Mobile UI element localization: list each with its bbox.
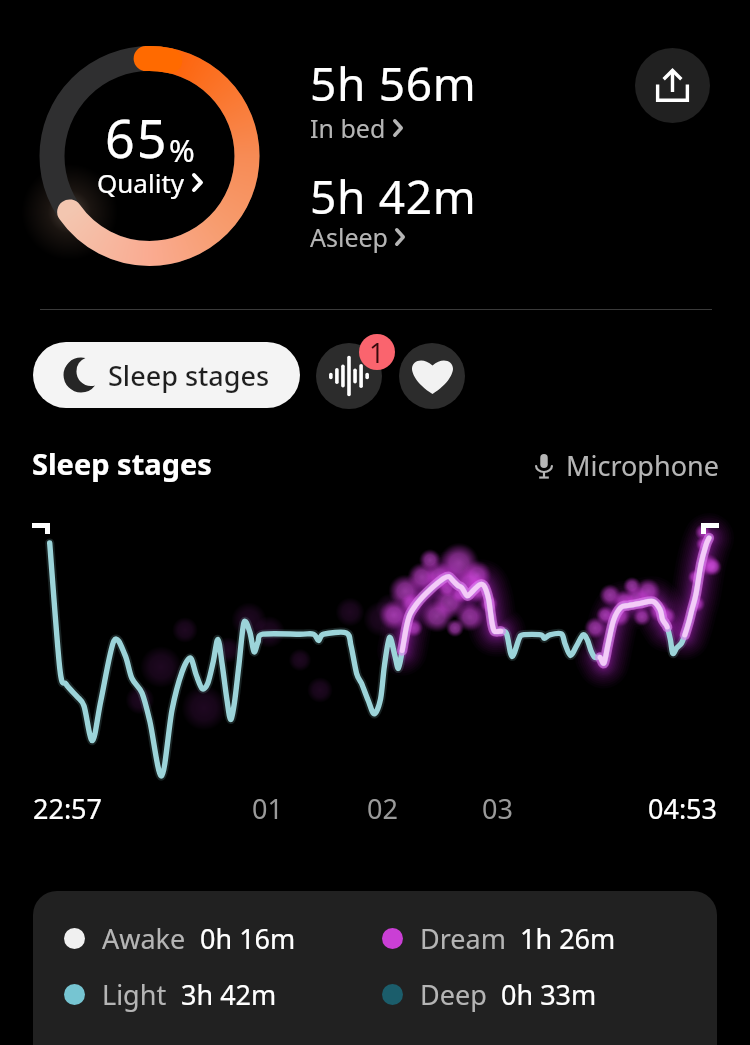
- button[interactable]: Sleep stages: [33, 342, 300, 408]
- staticText: Awake: [102, 920, 186, 957]
- staticText: 3h 42m: [181, 976, 277, 1013]
- staticText: Dream: [420, 920, 506, 957]
- staticText: 1: [369, 334, 385, 370]
- staticText: Quality: [97, 165, 185, 200]
- staticText: 04:53: [648, 790, 718, 827]
- button[interactable]: Sleep stages: [32, 444, 212, 483]
- staticText: Asleep: [310, 220, 388, 254]
- button[interactable]: 5h 42m: [310, 165, 510, 265]
- button[interactable]: Microphone: [533, 447, 719, 484]
- staticText: %: [169, 129, 195, 171]
- staticText: Light: [102, 976, 167, 1013]
- staticText: Sleep stages: [108, 357, 270, 394]
- staticText: 5h 56m: [310, 52, 477, 115]
- button[interactable]: Sounds: [316, 343, 382, 409]
- staticText: 65: [105, 102, 169, 173]
- staticText: Sleep stages: [32, 444, 212, 483]
- button[interactable]: 65: [62, 76, 237, 221]
- staticText: 0h 16m: [200, 920, 296, 957]
- staticText: Microphone: [566, 447, 719, 484]
- button[interactable]: 5h 56m: [310, 52, 510, 152]
- staticText: Deep: [420, 976, 487, 1013]
- button[interactable]: Share: [635, 48, 710, 123]
- staticText: 02: [367, 790, 398, 827]
- staticText: 22:57: [33, 790, 103, 827]
- staticText: 01: [252, 790, 283, 827]
- staticText: 5h 42m: [310, 165, 477, 228]
- staticText: 1h 26m: [520, 920, 616, 957]
- staticText: 0h 33m: [501, 976, 597, 1013]
- staticText: 03: [482, 790, 513, 827]
- staticText: In bed: [310, 111, 386, 145]
- button[interactable]: Awake: [33, 891, 717, 1045]
- button[interactable]: Favourite: [399, 343, 465, 409]
